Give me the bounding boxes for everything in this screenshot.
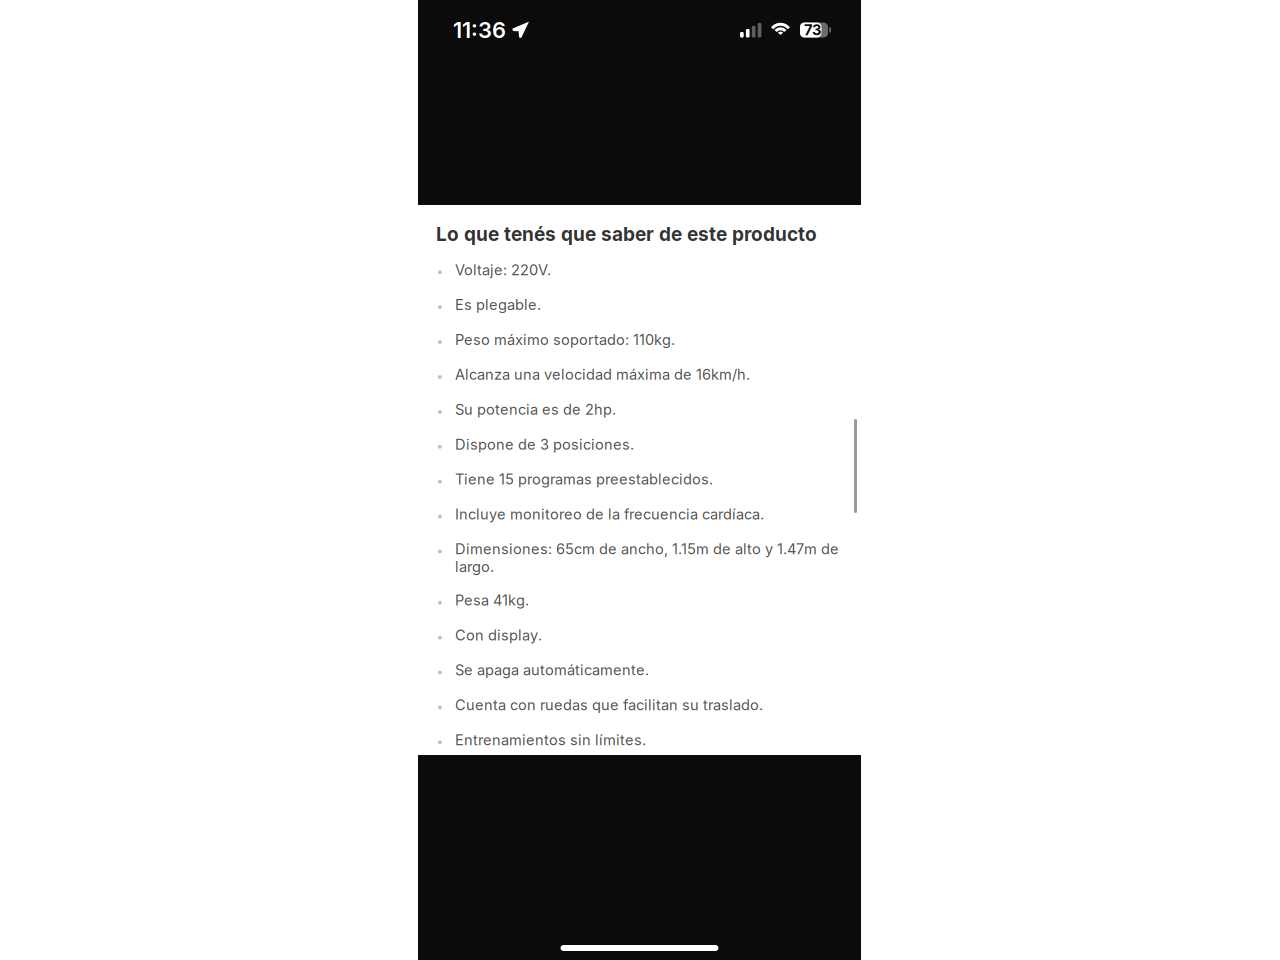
- staticText: 73: [804, 21, 821, 39]
- staticText: Dimensiones: 65cm de ancho, 1.15m de alt…: [455, 540, 839, 575]
- staticText: Su potencia es de 2hp.: [455, 401, 616, 418]
- staticText: Es plegable.: [455, 296, 541, 314]
- staticText: Alcanza una velocidad máxima de 16km/h.: [455, 366, 750, 383]
- button[interactable]: Fotos del producto: [418, 0, 861, 205]
- staticText: Voltaje: 220V.: [455, 261, 551, 279]
- staticText: Incluye monitoreo de la frecuencia cardí…: [455, 505, 764, 523]
- staticText: Con display.: [455, 626, 542, 644]
- staticText: Se apaga automáticamente.: [455, 661, 649, 679]
- staticText: Dispone de 3 posiciones.: [455, 435, 634, 453]
- staticText: Peso máximo soportado: 110kg.: [455, 331, 675, 348]
- staticText: Pesa 41kg.: [455, 591, 529, 609]
- staticText: Entrenamientos sin límites.: [455, 731, 646, 749]
- staticText: Cuenta con ruedas que facilitan su trasl…: [455, 696, 763, 714]
- staticText: Tiene 15 programas preestablecidos.: [455, 470, 713, 488]
- staticText: 11:36: [453, 17, 506, 43]
- staticText: Lo que tenés que saber de este producto: [436, 222, 817, 245]
